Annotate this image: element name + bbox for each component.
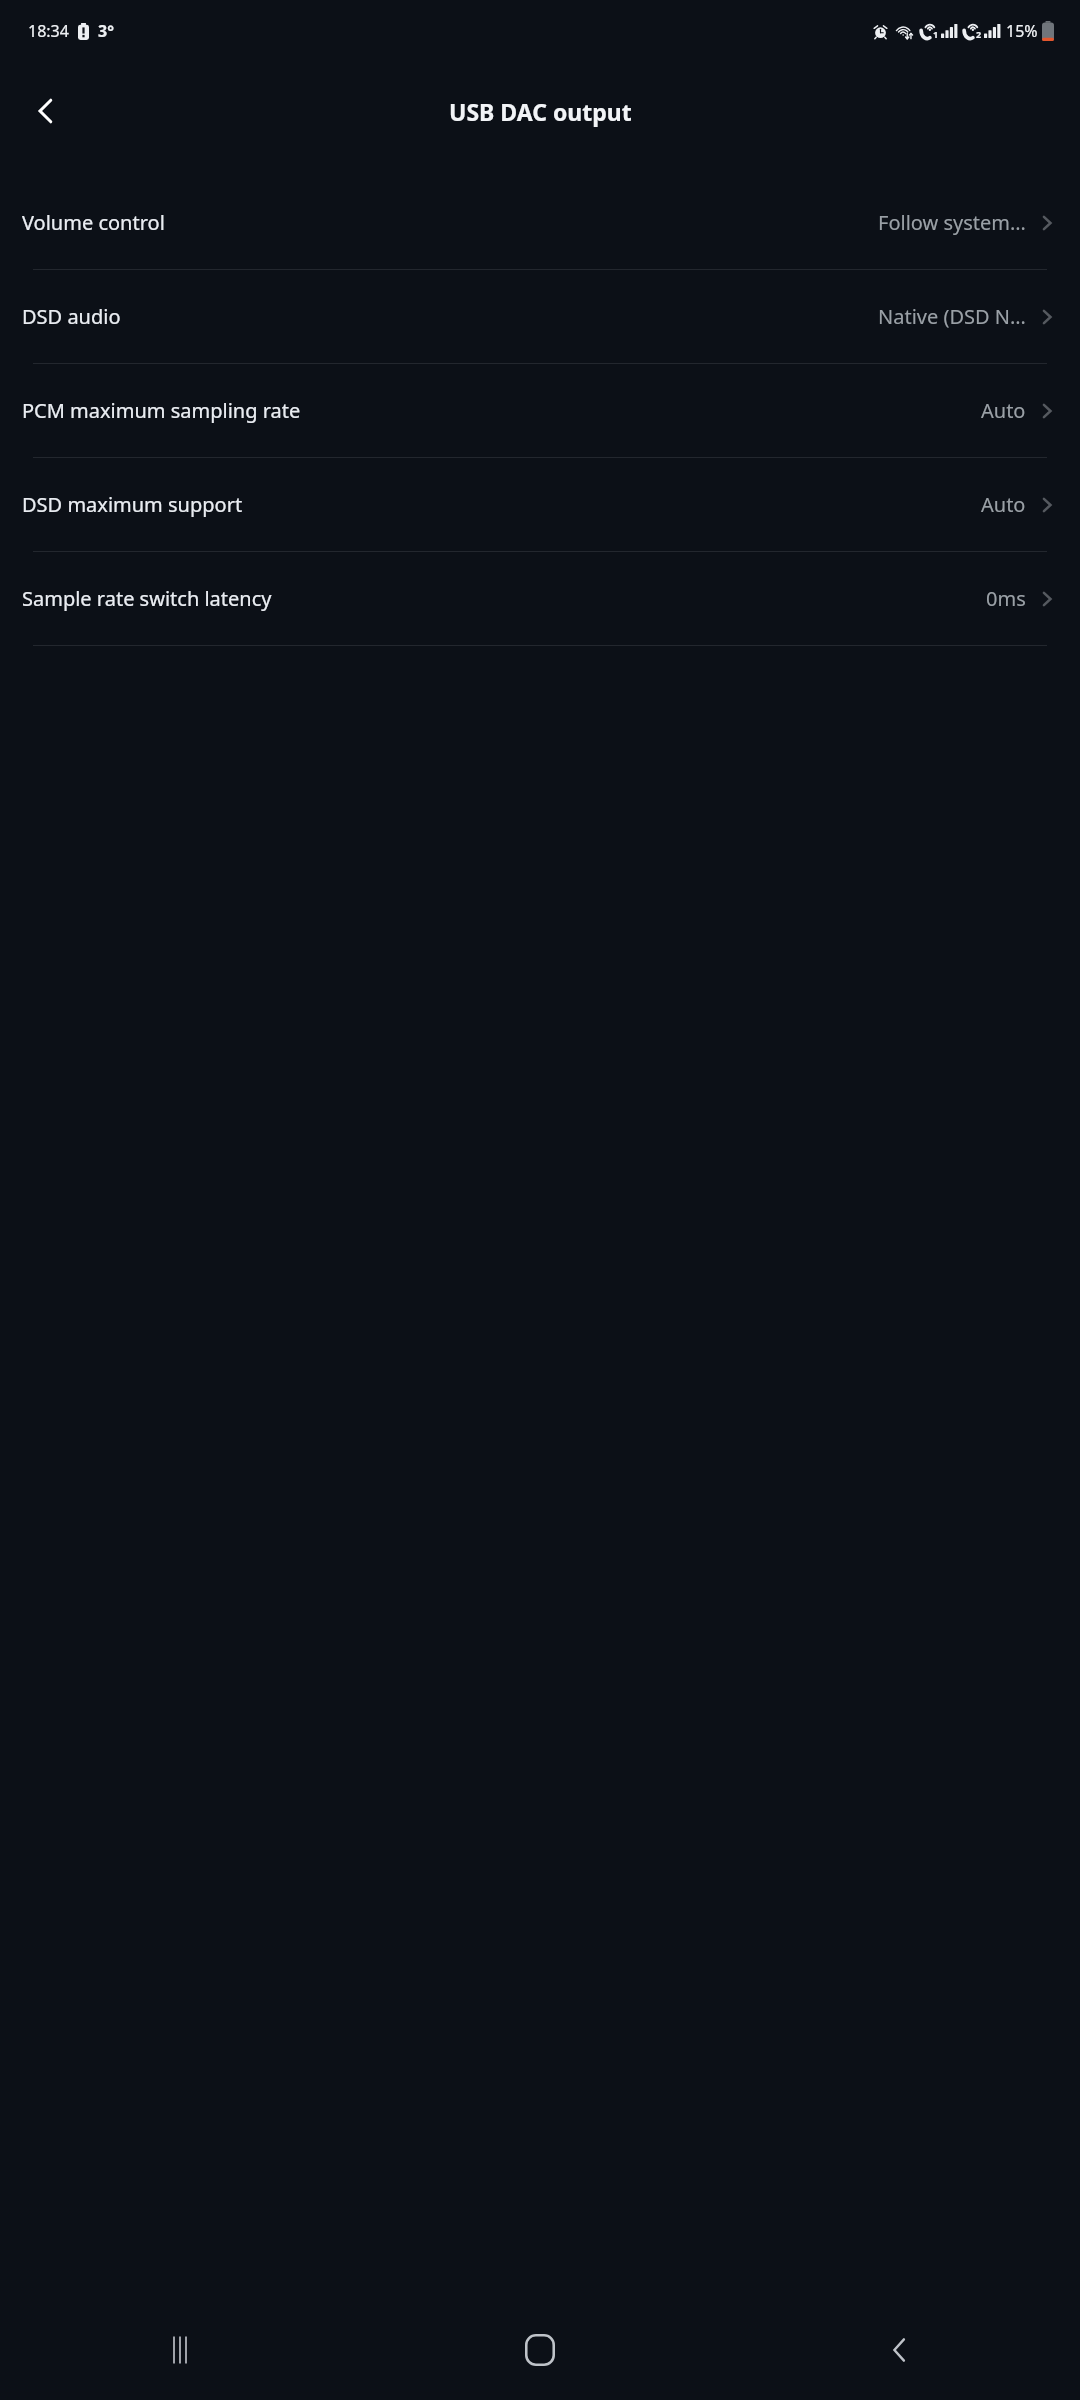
staticText: DSD maximum support — [22, 491, 243, 518]
button[interactable]: Recent apps — [145, 2315, 215, 2385]
button[interactable]: Sample rate switch latency — [0, 552, 1080, 645]
staticText: 1 — [933, 28, 939, 40]
staticText: Auto — [981, 491, 1026, 518]
staticText: DSD audio — [22, 303, 121, 330]
button[interactable]: Back — [12, 77, 80, 145]
staticText: 0ms — [986, 585, 1026, 612]
staticText: USB DAC output — [449, 96, 632, 127]
staticText: Follow system… — [878, 209, 1026, 236]
staticText: 15% — [1006, 20, 1038, 42]
button[interactable]: DSD audio — [0, 270, 1080, 363]
button[interactable]: DSD maximum support — [0, 458, 1080, 551]
button[interactable]: Back — [865, 2315, 935, 2385]
staticText: Volume control — [22, 209, 165, 236]
button[interactable]: Volume control — [0, 176, 1080, 269]
staticText: 18:34 — [28, 20, 69, 42]
button[interactable]: Home — [505, 2315, 575, 2385]
staticText: 3° — [98, 20, 114, 42]
staticText: PCM maximum sampling rate — [22, 397, 301, 424]
staticText: Auto — [981, 397, 1026, 424]
staticText: 2 — [976, 28, 982, 40]
staticText: Sample rate switch latency — [22, 585, 272, 612]
button[interactable]: PCM maximum sampling rate — [0, 364, 1080, 457]
staticText: Native (DSD N… — [878, 303, 1026, 330]
